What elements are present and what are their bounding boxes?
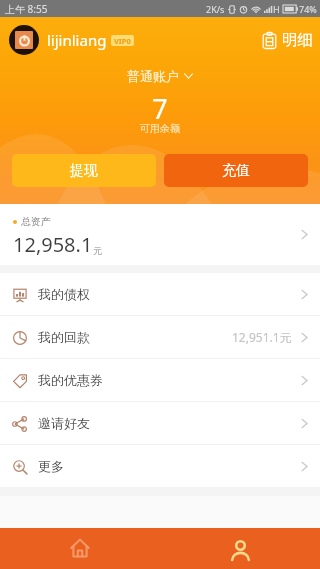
staticText: H [273,3,280,15]
staticText: 上午 8:55 [5,2,48,16]
button[interactable]: Profile [160,528,320,569]
staticText: 12,958.1 [13,231,93,258]
button[interactable]: 我的回款 [0,316,320,358]
staticText: 元 [93,245,102,256]
button[interactable]: 充值 [164,154,308,187]
button[interactable]: 我的债权 [0,273,320,315]
button[interactable]: 总资产 [0,204,320,265]
button[interactable]: 普通账户 [0,68,320,84]
staticText: 2K/s [206,3,225,15]
staticText: 我的回款 [38,329,90,345]
button[interactable]: 邀请好友 [0,402,320,444]
staticText: 总资产 [21,215,51,228]
button[interactable]: 更多 [0,445,320,487]
staticText: VIP0 [114,36,131,46]
staticText: 我的优惠券 [38,372,103,388]
staticText: 充值 [222,162,250,180]
staticText: 可用余额 [0,122,320,135]
staticText: lijinliang [47,30,107,50]
staticText: 明细 [282,30,313,50]
staticText: 提现 [70,162,98,180]
button[interactable]: 我的优惠券 [0,359,320,401]
staticText: 我的债权 [38,286,90,302]
button[interactable]: Home [0,528,160,569]
staticText: 7 [0,90,320,127]
staticText: 更多 [38,458,64,474]
staticText: 12,951.1元 [232,329,292,345]
staticText: 普通账户 [127,68,179,84]
button[interactable]: 提现 [12,154,156,187]
staticText: 邀请好友 [38,415,90,431]
button[interactable]: 明细 [256,26,319,54]
staticText: 74% [299,3,317,15]
